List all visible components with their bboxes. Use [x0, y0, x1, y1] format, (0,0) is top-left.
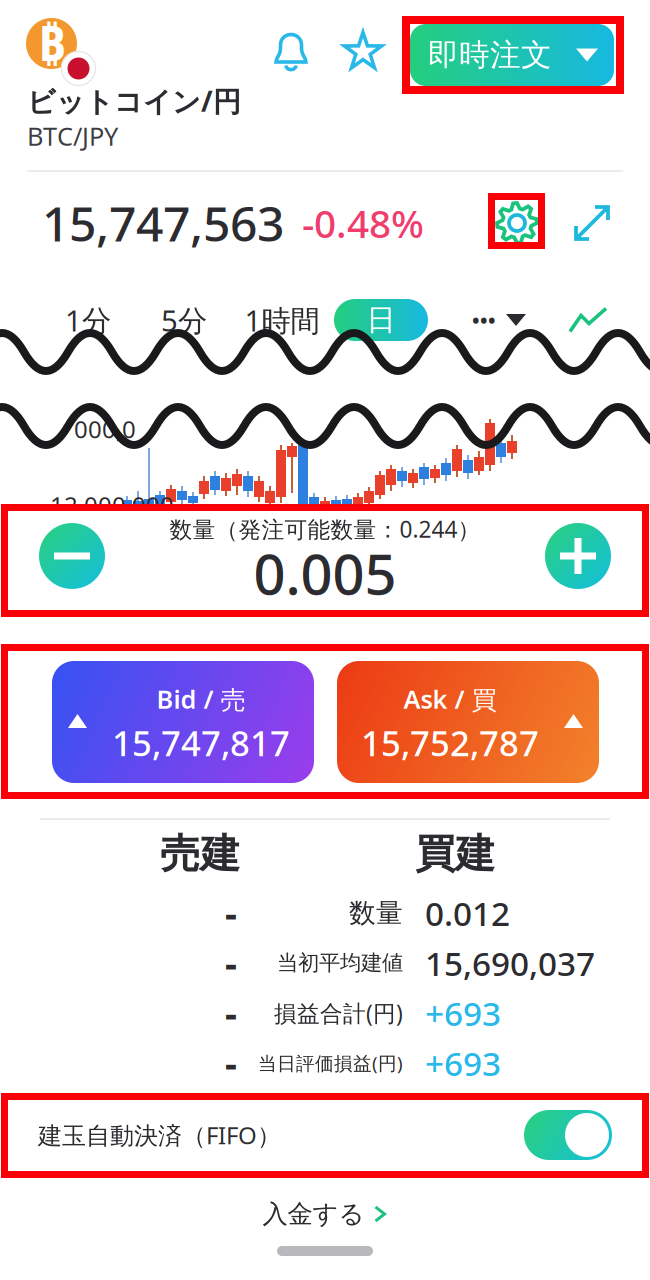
staticText: Ask / 買: [403, 682, 496, 716]
button[interactable]: 入金する: [0, 1182, 650, 1246]
staticText: -: [225, 938, 237, 988]
button[interactable]: Bid / 売: [52, 661, 314, 783]
staticText: 数量（発注可能数量：0.244）: [169, 514, 480, 544]
staticText: 0.012: [425, 891, 510, 935]
button[interactable]: 建玉自動決済（FIFO）: [0, 1088, 650, 1182]
button[interactable]: Chart settings: [490, 196, 544, 250]
button[interactable]: Decrease quantity: [28, 512, 116, 600]
button[interactable]: Favorite: [336, 24, 390, 80]
button[interactable]: 日: [334, 299, 428, 341]
staticText: 5分: [161, 300, 207, 339]
button[interactable]: More chart options: [472, 298, 526, 342]
staticText: 損益合計(円): [274, 998, 403, 1028]
staticText: 入金する: [262, 1198, 364, 1229]
staticText: -: [225, 1038, 237, 1088]
staticText: 15,747,563: [42, 191, 284, 255]
staticText: 売建: [160, 829, 240, 878]
staticText: +693: [425, 1041, 501, 1085]
button[interactable]: 即時注文: [410, 24, 614, 86]
staticText: 0.005: [253, 536, 396, 610]
staticText: 建玉自動決済（FIFO）: [38, 1119, 281, 1151]
staticText: 当日評価損益(円): [258, 1051, 403, 1075]
staticText: 15,752,787: [361, 720, 539, 766]
staticText: 1分: [65, 300, 111, 339]
button[interactable]: Alerts: [264, 24, 318, 80]
staticText: ₿: [38, 11, 65, 74]
button[interactable]: Ask / 買: [337, 661, 599, 783]
staticText: -: [225, 988, 237, 1038]
staticText: 000,0: [74, 413, 136, 445]
staticText: 即時注文: [428, 36, 552, 74]
button[interactable]: Increase quantity: [534, 512, 622, 600]
staticText: 1時間: [244, 300, 319, 339]
staticText: -0.48%: [302, 197, 424, 249]
staticText: 数量: [349, 897, 403, 929]
staticText: ビットコイン/円: [27, 82, 241, 120]
button[interactable]: 1分: [57, 298, 119, 342]
button[interactable]: Fullscreen chart: [568, 196, 616, 250]
staticText: BTC/JPY: [27, 119, 118, 153]
staticText: 日: [366, 302, 395, 338]
button[interactable]: 1時間: [240, 298, 324, 342]
staticText: 15,690,037: [425, 941, 595, 985]
staticText: Bid / 売: [156, 682, 245, 716]
staticText: 12,000,000: [50, 489, 174, 521]
staticText: +693: [425, 991, 501, 1035]
staticText: •••: [472, 307, 496, 333]
staticText: 当初平均建値: [277, 950, 403, 976]
staticText: 買建: [415, 829, 495, 878]
staticText: 15,747,817: [112, 720, 290, 766]
staticText: -: [225, 888, 237, 938]
button[interactable]: Chart style: [566, 298, 610, 342]
button[interactable]: 5分: [153, 298, 215, 342]
